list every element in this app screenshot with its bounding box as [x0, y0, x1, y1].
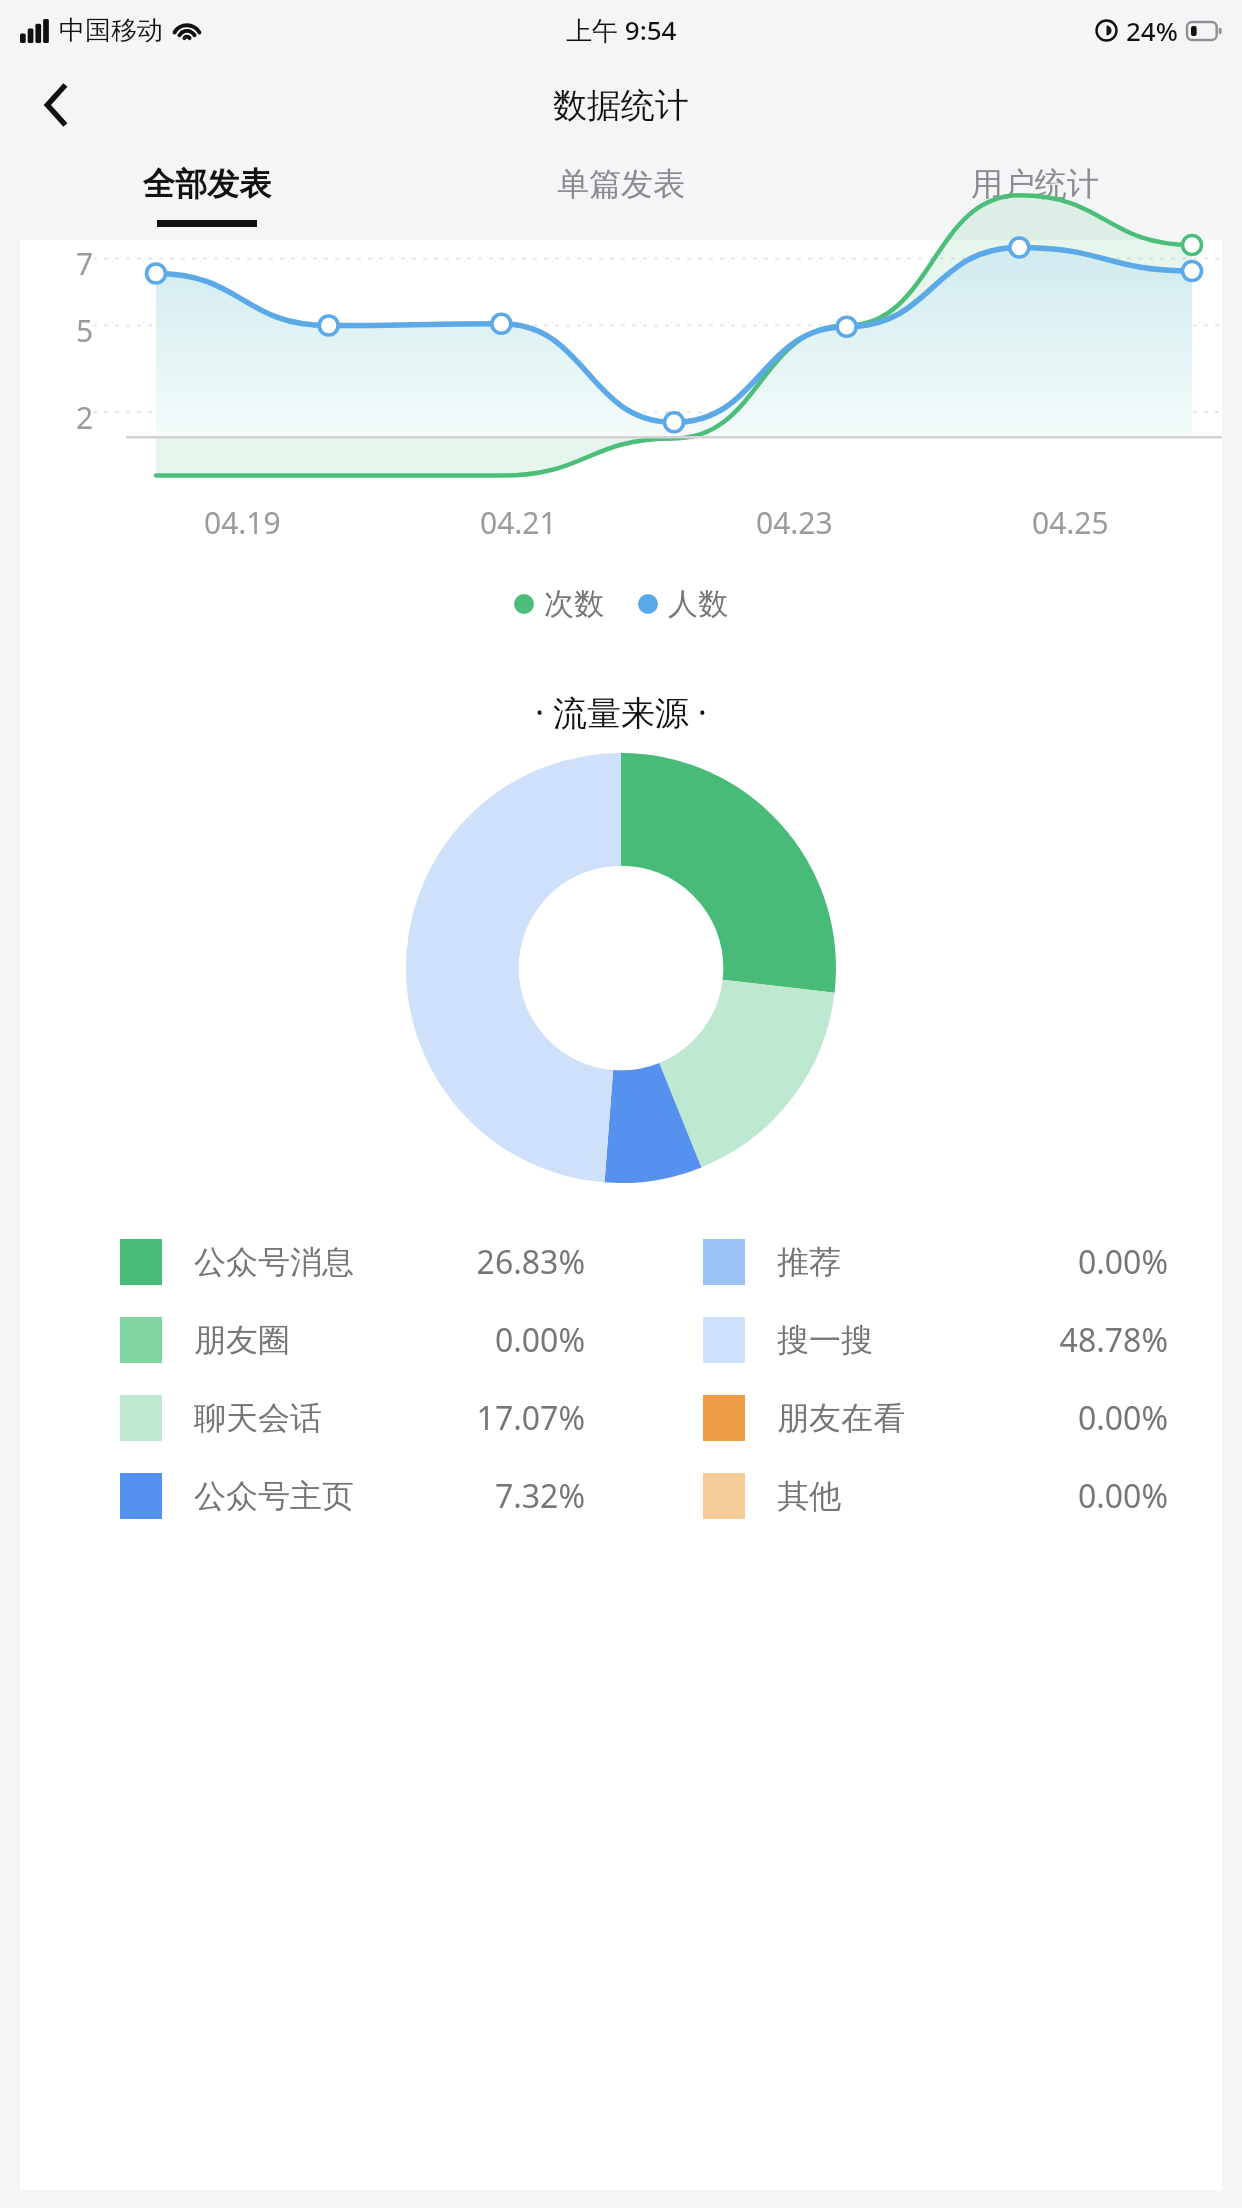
staticText: 5 — [76, 310, 94, 351]
button[interactable]: Back — [26, 74, 88, 136]
button[interactable]: 朋友圈 — [38, 1301, 621, 1379]
staticText: 搜一搜 — [777, 1320, 873, 1360]
button[interactable]: 全部发表 — [0, 150, 414, 240]
staticText: 0.00% — [1077, 1396, 1168, 1440]
staticText: 次数 — [544, 585, 604, 623]
button[interactable]: 搜一搜 — [621, 1301, 1204, 1379]
staticText: 朋友圈 — [194, 1320, 290, 1360]
staticText: 推荐 — [777, 1242, 841, 1282]
button[interactable]: 用户统计 — [828, 150, 1242, 240]
staticText: 上午 9:54 — [566, 12, 677, 48]
staticText: 24% — [1126, 13, 1178, 48]
staticText: 全部发表 — [143, 164, 271, 204]
staticText: 0.00% — [1077, 1474, 1168, 1518]
staticText: 48.78% — [1059, 1318, 1168, 1362]
staticText: 04.19 — [204, 502, 281, 543]
staticText: 0.00% — [1077, 1240, 1168, 1284]
button[interactable]: 公众号消息 — [38, 1223, 621, 1301]
staticText: 人数 — [668, 585, 728, 623]
staticText: 17.07% — [476, 1396, 585, 1440]
staticText: 朋友在看 — [777, 1398, 905, 1438]
staticText: 0.00% — [494, 1318, 585, 1362]
button[interactable]: 公众号主页 — [38, 1457, 621, 1535]
staticText: 公众号消息 — [194, 1242, 354, 1282]
staticText: 数据统计 — [553, 84, 689, 127]
button[interactable]: 其他 — [621, 1457, 1204, 1535]
staticText: 04.23 — [756, 502, 833, 543]
staticText: 聊天会话 — [194, 1398, 322, 1438]
staticText: 其他 — [777, 1476, 841, 1516]
staticText: 用户统计 — [971, 164, 1099, 204]
staticText: 单篇发表 — [557, 164, 685, 204]
button[interactable]: 单篇发表 — [414, 150, 828, 240]
button[interactable]: 推荐 — [621, 1223, 1204, 1301]
staticText: 2 — [76, 397, 94, 438]
staticText: 7 — [76, 243, 94, 284]
staticText: 04.21 — [480, 502, 557, 543]
staticText: · 流量来源 · — [535, 689, 707, 735]
staticText: 04.25 — [1032, 502, 1109, 543]
staticText: 26.83% — [476, 1240, 585, 1284]
staticText: 公众号主页 — [194, 1476, 354, 1516]
button[interactable]: 聊天会话 — [38, 1379, 621, 1457]
staticText: 中国移动 — [59, 14, 163, 47]
button[interactable]: 朋友在看 — [621, 1379, 1204, 1457]
staticText: 7.32% — [494, 1474, 585, 1518]
